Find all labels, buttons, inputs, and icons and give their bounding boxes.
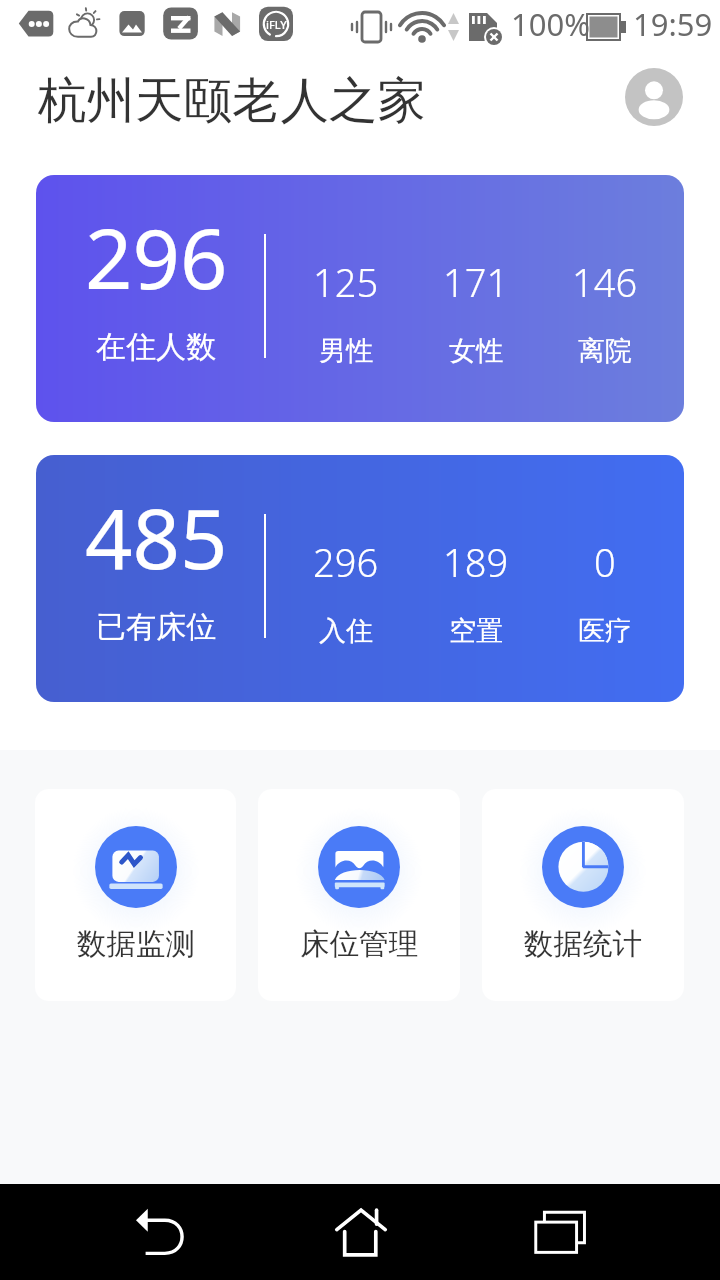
staticText: 100% <box>511 3 590 45</box>
button[interactable]: 485 <box>36 455 684 702</box>
button[interactable]: Home <box>260 1184 460 1280</box>
staticText: 医疗 <box>578 614 632 648</box>
staticText: 19:59 <box>633 3 713 45</box>
staticText: 146 <box>572 256 638 308</box>
staticText: 在住人数 <box>96 328 216 366</box>
button[interactable]: 床位管理 <box>258 789 460 1001</box>
staticText: 189 <box>443 536 509 588</box>
staticText: 入住 <box>319 614 373 648</box>
staticText: 125 <box>313 256 379 308</box>
button[interactable]: 数据统计 <box>482 789 684 1001</box>
staticText: 杭州天颐老人之家 <box>38 70 426 131</box>
staticText: 数据统计 <box>524 926 642 963</box>
staticText: 男性 <box>319 334 373 368</box>
staticText: 171 <box>443 256 509 308</box>
button[interactable]: Profile <box>625 68 683 126</box>
staticText: iFLY <box>266 17 287 32</box>
staticText: 296 <box>313 536 379 588</box>
staticText: 女性 <box>449 334 503 368</box>
button[interactable]: 296 <box>36 175 684 422</box>
staticText: 离院 <box>578 334 632 368</box>
staticText: 已有床位 <box>96 608 216 646</box>
staticText: 空置 <box>449 614 503 648</box>
staticText: 0 <box>594 536 616 588</box>
button[interactable]: Back <box>60 1184 260 1280</box>
staticText: 床位管理 <box>300 926 418 963</box>
button[interactable]: Recents <box>460 1184 660 1280</box>
button[interactable]: 数据监测 <box>35 789 236 1001</box>
staticText: 296 <box>85 200 228 313</box>
staticText: 485 <box>85 480 228 593</box>
staticText: 数据监测 <box>77 926 195 963</box>
